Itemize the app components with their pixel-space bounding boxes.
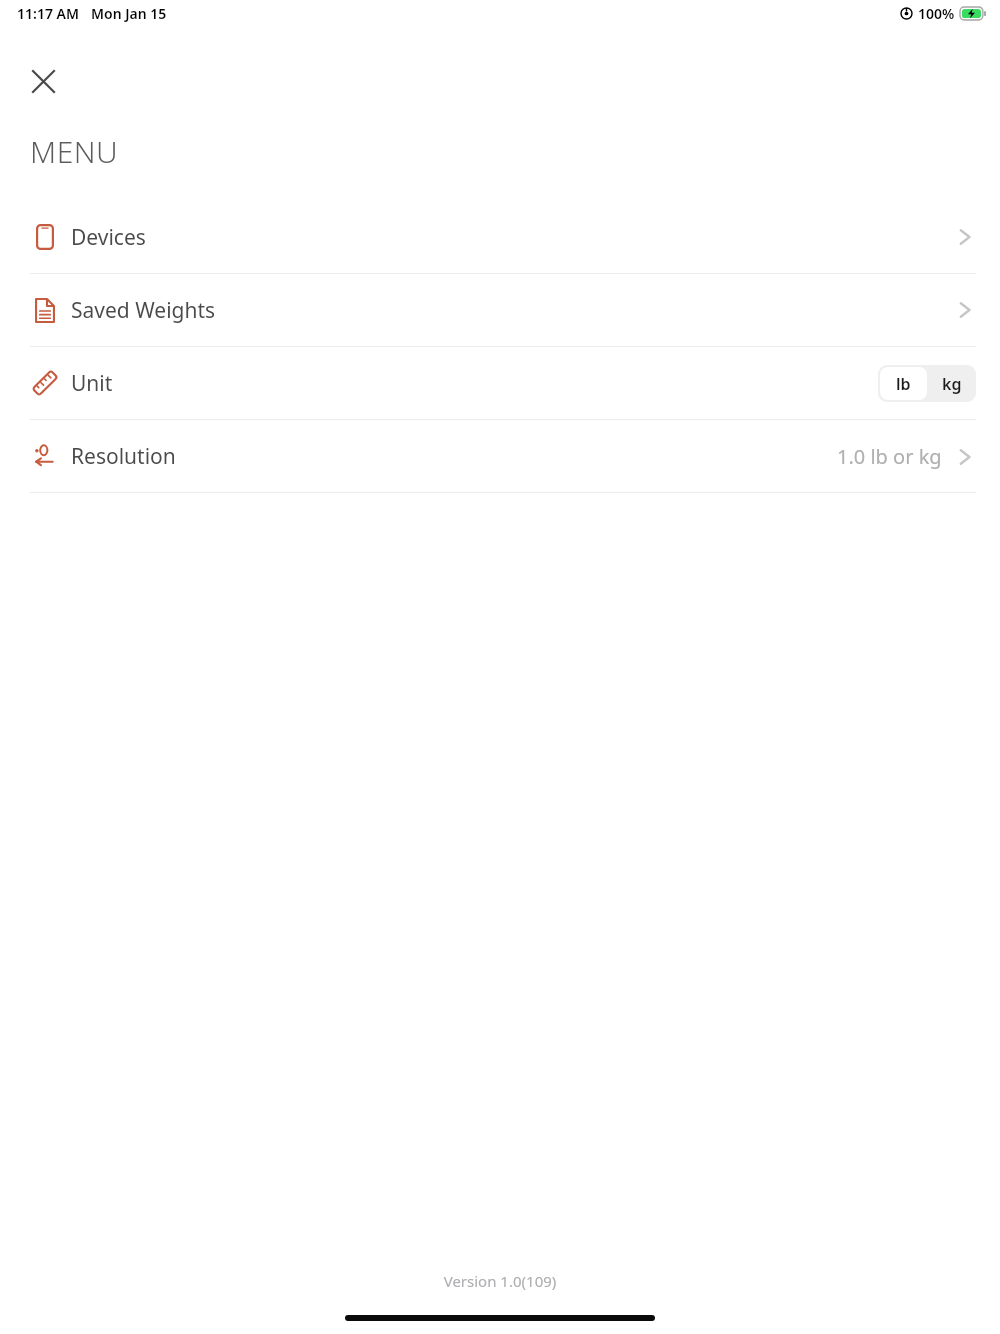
staticText: Unit (71, 369, 113, 398)
staticText: MENU (30, 131, 119, 172)
button[interactable]: Close (20, 58, 66, 104)
staticText: kg (942, 373, 962, 395)
other: Resolution (33, 443, 57, 469)
other: Unit (31, 369, 59, 397)
staticText: Mon Jan 15 (91, 4, 167, 23)
button[interactable]: kg (927, 365, 976, 402)
button[interactable]: Resolution (0, 420, 1000, 492)
staticText: Saved Weights (71, 296, 216, 325)
staticText: lb (896, 373, 911, 395)
button[interactable]: Unit (0, 347, 1000, 419)
staticText: 11:17 AM (17, 4, 79, 23)
staticText: 1.0 lb or kg (837, 443, 942, 470)
staticText: 100% (918, 4, 955, 23)
button[interactable]: Saved Weights (0, 274, 1000, 346)
button[interactable]: lb (880, 367, 927, 400)
staticText: Version 1.0(109) (0, 1271, 1000, 1291)
staticText: Resolution (71, 442, 176, 471)
button[interactable]: Devices (0, 201, 1000, 273)
other: Devices (36, 224, 54, 250)
staticText: Devices (71, 223, 146, 252)
other: Saved Weights (35, 298, 55, 323)
